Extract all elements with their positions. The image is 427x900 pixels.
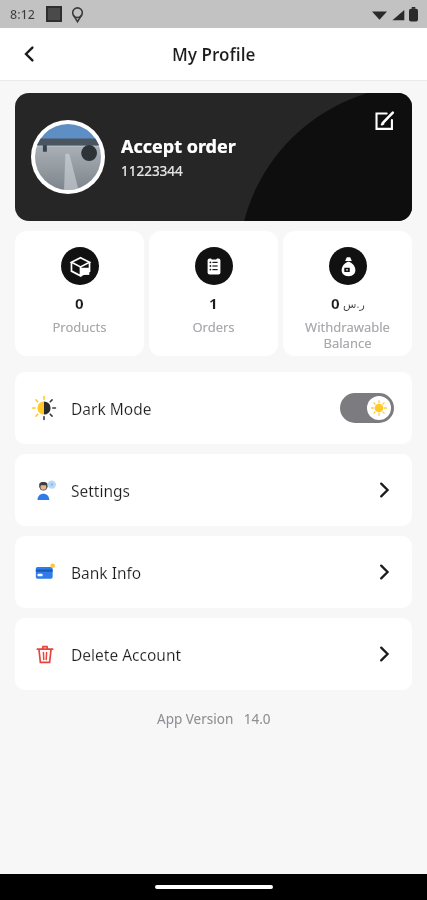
staticText: 0 xyxy=(331,293,340,313)
other: Settings xyxy=(374,480,394,500)
button[interactable]: Edit profile xyxy=(364,101,404,141)
button[interactable]: Dark Mode xyxy=(15,372,412,444)
staticText: 8:12 xyxy=(10,6,35,23)
staticText: Bank Info xyxy=(71,562,142,583)
other: Bank Info xyxy=(374,562,394,582)
button[interactable]: Dark mode toggle xyxy=(340,393,394,423)
button[interactable]: Back xyxy=(8,32,52,76)
staticText: Orders xyxy=(192,318,235,336)
button[interactable]: Accept order xyxy=(15,93,412,221)
staticText: App Version 14.0 xyxy=(157,710,271,728)
button[interactable]: 0 xyxy=(283,231,412,356)
button[interactable]: Delete Account xyxy=(15,618,412,690)
button[interactable]: Settings xyxy=(15,454,412,526)
staticText: 11223344 xyxy=(121,162,183,180)
other: Delete Account xyxy=(374,644,394,664)
button[interactable]: Bank Info xyxy=(15,536,412,608)
button[interactable]: 0 xyxy=(15,231,144,356)
staticText: 1 xyxy=(209,293,218,313)
staticText: Dark Mode xyxy=(71,398,152,419)
staticText: My Profile xyxy=(172,43,256,66)
staticText: Withdrawable Balance xyxy=(305,318,390,351)
staticText: Products xyxy=(52,318,107,336)
staticText: 0 xyxy=(75,293,84,313)
button[interactable]: 1 xyxy=(149,231,278,356)
staticText: Settings xyxy=(71,480,130,501)
staticText: Accept order xyxy=(121,134,236,159)
staticText: Delete Account xyxy=(71,644,182,665)
staticText: ر.س xyxy=(343,296,365,311)
